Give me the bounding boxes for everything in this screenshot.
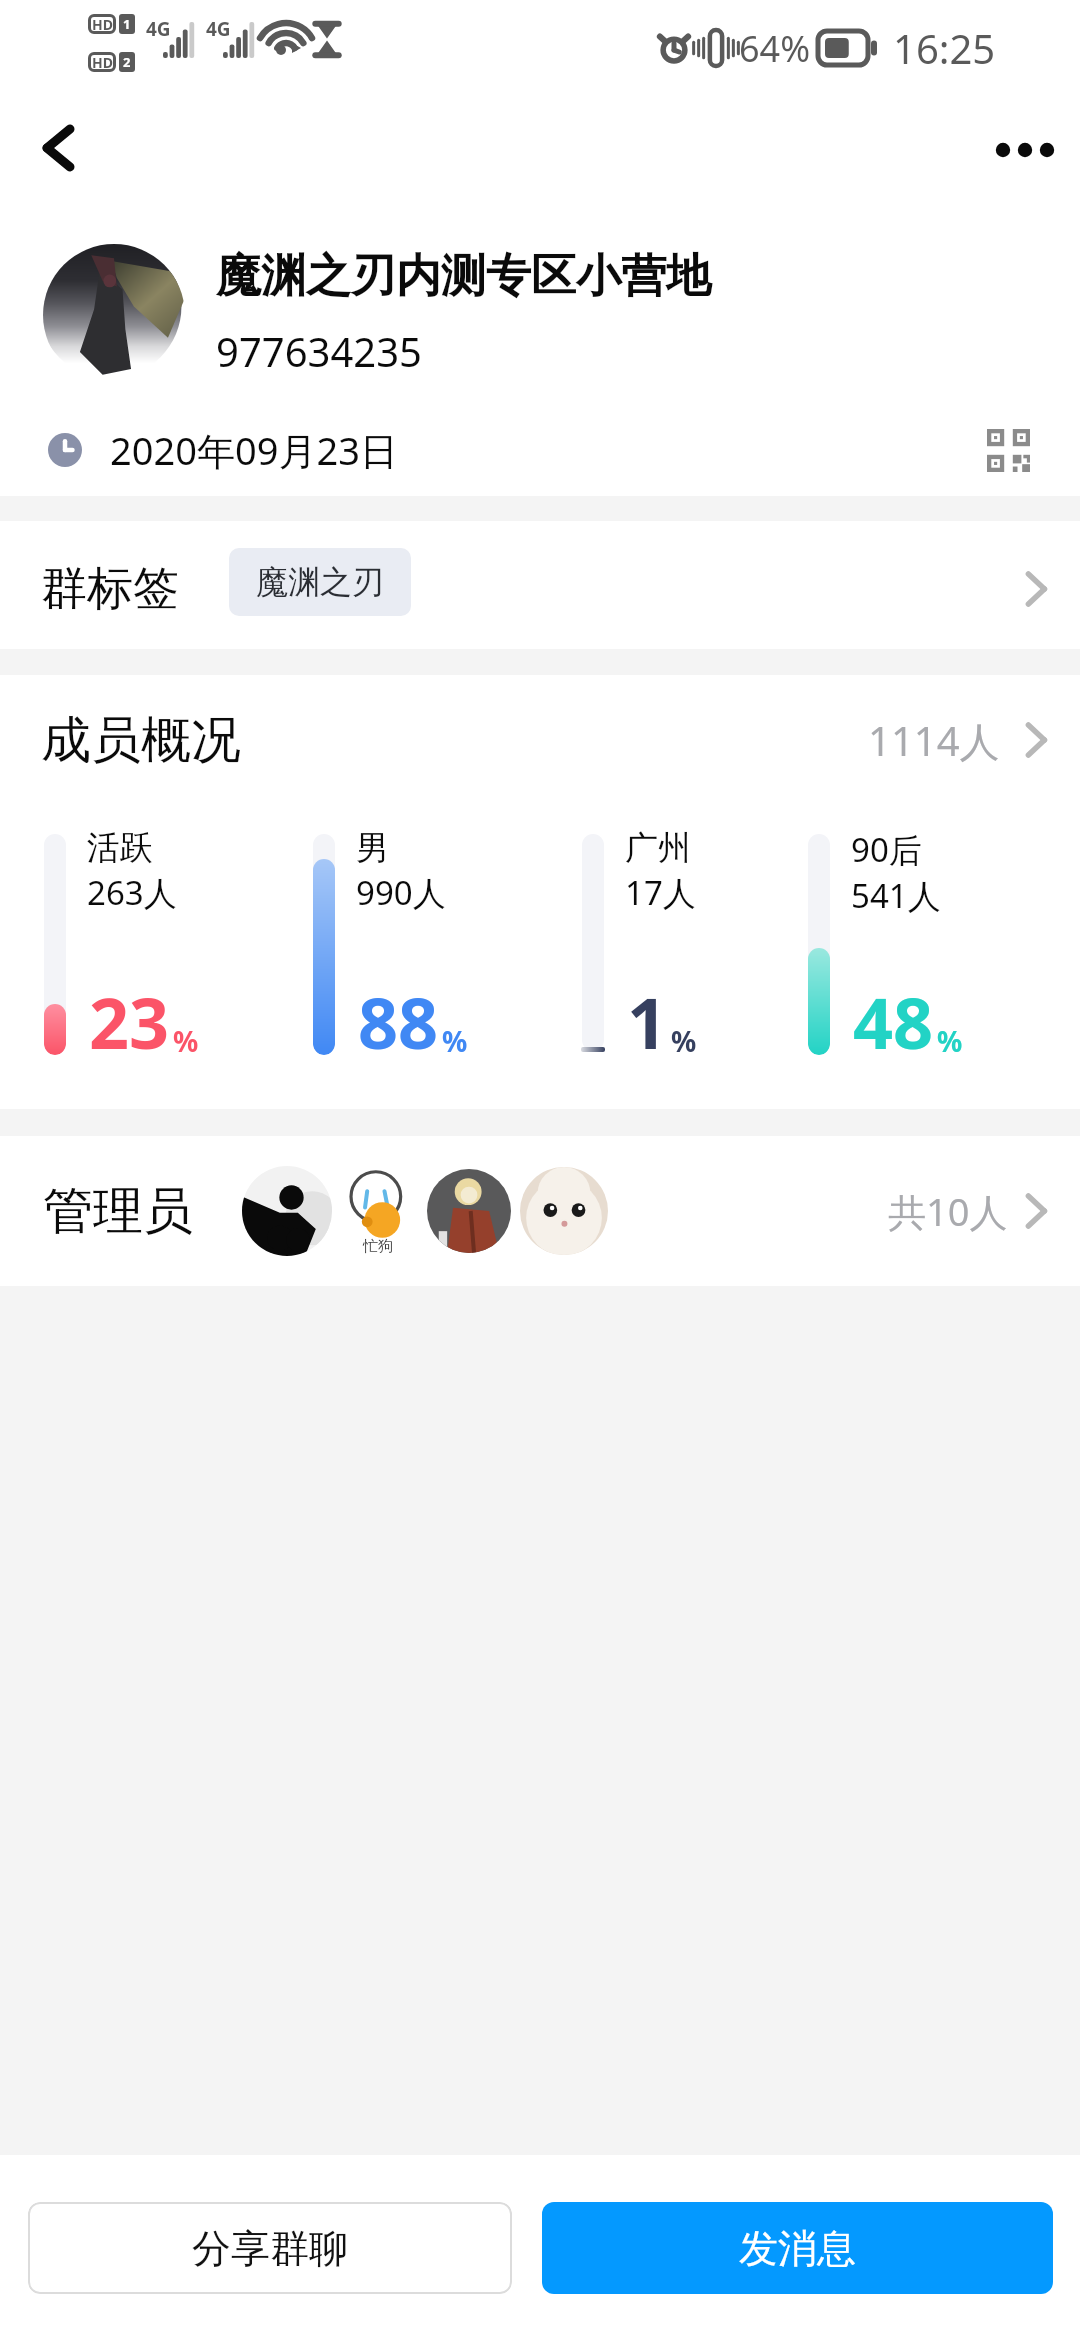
staticText: 男 bbox=[356, 827, 389, 869]
staticText: 广州 bbox=[625, 827, 691, 869]
staticText: 管理员 bbox=[43, 1180, 193, 1243]
staticText: 1 bbox=[123, 15, 131, 33]
staticText: 17人 bbox=[625, 870, 696, 915]
staticText: 活跃 bbox=[87, 827, 153, 869]
staticText: 88 bbox=[358, 974, 439, 1069]
staticText: 48 bbox=[853, 974, 934, 1069]
staticText: 群标签 bbox=[41, 560, 179, 618]
staticText: 魔渊之刃 bbox=[256, 562, 384, 602]
staticText: 263人 bbox=[87, 870, 177, 915]
staticText: 64% bbox=[739, 24, 811, 73]
staticText: 2 bbox=[123, 53, 131, 71]
button[interactable]: QR code bbox=[976, 418, 1040, 482]
staticText: 4G bbox=[206, 16, 231, 42]
button[interactable]: 发消息 bbox=[542, 2202, 1053, 2294]
staticText: 990人 bbox=[356, 870, 446, 915]
staticText: 2020年09月23日 bbox=[110, 424, 398, 476]
staticText: 4G bbox=[146, 16, 171, 42]
staticText: HD bbox=[92, 53, 113, 72]
staticText: 541人 bbox=[851, 873, 941, 918]
staticText: 1 bbox=[627, 974, 668, 1069]
staticText: 23 bbox=[89, 974, 170, 1069]
button[interactable]: 群标签 bbox=[0, 521, 1080, 649]
staticText: 1114人 bbox=[868, 713, 1000, 768]
staticText: 90后 bbox=[851, 827, 922, 872]
button[interactable]: 分享群聊 bbox=[28, 2202, 512, 2294]
staticText: % bbox=[937, 1022, 963, 1060]
button[interactable]: Back bbox=[14, 110, 90, 186]
button[interactable]: 管理员 bbox=[0, 1136, 1080, 1286]
staticText: % bbox=[173, 1022, 199, 1060]
button[interactable]: 成员概况 bbox=[0, 675, 1080, 800]
button[interactable]: More options bbox=[990, 110, 1066, 186]
staticText: 发消息 bbox=[739, 2224, 856, 2273]
staticText: % bbox=[671, 1022, 697, 1060]
staticText: 16:25 bbox=[893, 21, 996, 75]
staticText: 977634235 bbox=[216, 324, 422, 378]
staticText: HD bbox=[92, 15, 113, 34]
staticText: % bbox=[442, 1022, 468, 1060]
staticText: 魔渊之刃内测专区小营地 bbox=[216, 248, 711, 305]
staticText: 分享群聊 bbox=[192, 2224, 348, 2273]
staticText: 共10人 bbox=[888, 1185, 1008, 1237]
staticText: 成员概况 bbox=[41, 709, 241, 772]
staticText: 忙狗 bbox=[363, 1237, 393, 1256]
